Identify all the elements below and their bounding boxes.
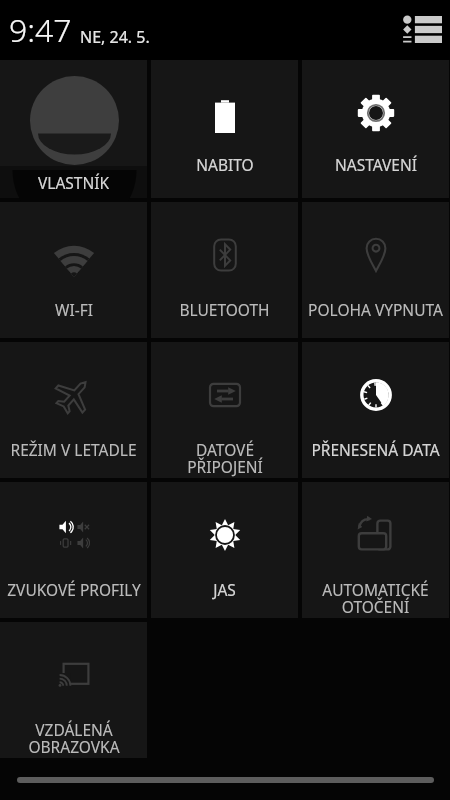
staticText: JAS (213, 579, 236, 600)
staticText: 9:47 (9, 8, 72, 52)
staticText: NABITO (196, 154, 254, 175)
staticText: REŽIM V LETADLE (10, 439, 137, 460)
staticText: PŘENESENÁ DATA (311, 439, 440, 460)
staticText: DATOVÉ PŘIPOJENÍ (187, 439, 263, 478)
staticText: BLUETOOTH (179, 299, 270, 320)
staticText: POLOHA VYPNUTA (308, 299, 443, 320)
button[interactable]: PŘENESENÁ DATA (302, 342, 449, 478)
staticText: NE, 24. 5. (80, 26, 150, 48)
staticText: AUTOMATICKÉ OTOČENÍ (322, 579, 429, 618)
button[interactable]: ZVUKOVÉ PROFILY (0, 482, 147, 618)
button[interactable]: REŽIM V LETADLE (0, 342, 147, 478)
button[interactable]: VZDÁLENÁ OBRAZOVKA (0, 622, 147, 758)
staticText: ZVUKOVÉ PROFILY (7, 579, 141, 600)
staticText: NASTAVENÍ (335, 154, 417, 175)
button[interactable]: Settings (400, 8, 444, 52)
button[interactable]: NABITO (151, 60, 298, 198)
button[interactable]: VLASTNÍK (0, 60, 147, 198)
button[interactable]: NASTAVENÍ (302, 60, 449, 198)
staticText: VZDÁLENÁ OBRAZOVKA (28, 719, 120, 758)
button[interactable]: AUTOMATICKÉ OTOČENÍ (302, 482, 449, 618)
button[interactable]: JAS (151, 482, 298, 618)
button[interactable]: WI-FI (0, 202, 147, 338)
button[interactable]: DATOVÉ PŘIPOJENÍ (151, 342, 298, 478)
button[interactable]: POLOHA VYPNUTA (302, 202, 449, 338)
staticText: WI-FI (55, 299, 93, 320)
staticText: VLASTNÍK (38, 172, 110, 193)
button[interactable]: BLUETOOTH (151, 202, 298, 338)
